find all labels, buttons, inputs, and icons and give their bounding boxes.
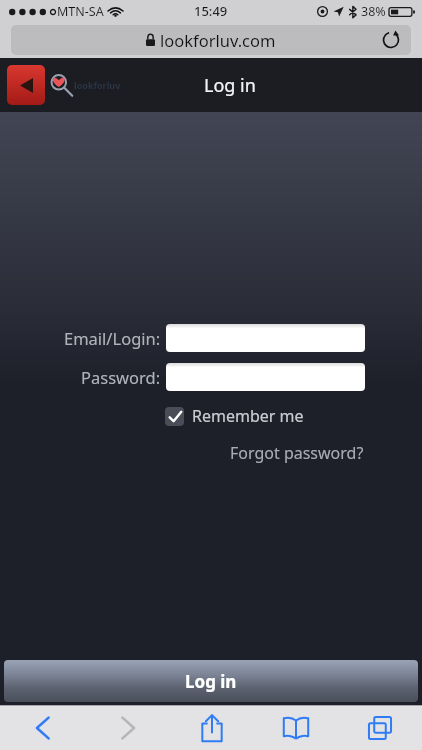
staticText: Log in	[185, 670, 237, 693]
button[interactable]: Bookmarks	[254, 706, 338, 750]
button[interactable]: lookforluv home	[50, 74, 121, 96]
staticText: 38%	[361, 3, 386, 20]
button[interactable]	[166, 324, 365, 352]
staticText: Log in	[204, 73, 256, 98]
button[interactable]: Share	[170, 706, 254, 750]
staticText: Forgot password?	[230, 442, 364, 464]
staticText: Remember me	[192, 405, 304, 427]
button[interactable]: Back	[0, 706, 85, 750]
staticText: Email/Login:	[64, 327, 161, 349]
button[interactable]: Back	[7, 65, 45, 105]
staticText: lookforluv.com	[160, 29, 276, 51]
staticText: Password:	[81, 366, 161, 388]
button[interactable]: Reload	[380, 29, 402, 51]
button[interactable]: Remember me	[165, 405, 304, 427]
staticText: lookforluv	[74, 79, 121, 91]
staticText: MTN-SA	[57, 3, 104, 20]
staticText: 15:49	[194, 2, 228, 20]
button[interactable]: Log in	[4, 660, 418, 702]
button[interactable]: Tabs	[338, 706, 422, 750]
button[interactable]: Forward	[85, 706, 170, 750]
button[interactable]	[166, 363, 365, 391]
button[interactable]: lookforluv.com	[11, 25, 411, 55]
button[interactable]: Forgot password?	[230, 442, 364, 464]
